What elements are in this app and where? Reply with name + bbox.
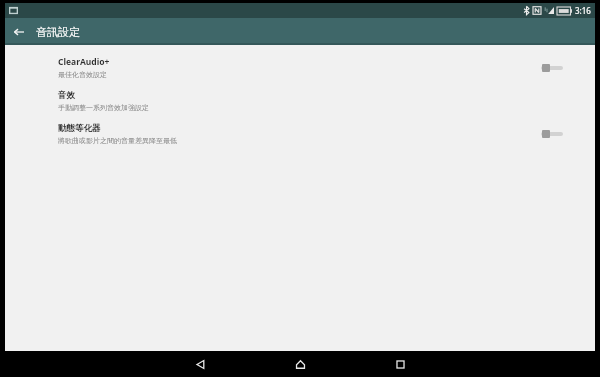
- staticText: 音效: [58, 90, 75, 101]
- button[interactable]: Toggle ClearAudio+: [539, 59, 565, 77]
- button[interactable]: Toggle 動態等化器: [539, 125, 565, 143]
- button[interactable]: 動態等化器: [5, 117, 595, 150]
- button[interactable]: 音效: [5, 84, 595, 117]
- staticText: 最佳化音效設定: [58, 70, 107, 79]
- staticText: 手動調整一系列音效加強設定: [58, 103, 149, 112]
- button[interactable]: Home: [278, 351, 322, 377]
- staticText: 音訊設定: [36, 25, 80, 39]
- button[interactable]: Recent apps: [378, 351, 422, 377]
- button[interactable]: Back: [5, 18, 32, 45]
- staticText: 將歌曲或影片之間的音量差異降至最低: [58, 136, 177, 145]
- staticText: 3:16: [575, 5, 591, 16]
- button[interactable]: ClearAudio+: [5, 51, 595, 84]
- staticText: ClearAudio+: [58, 56, 110, 68]
- button[interactable]: Back: [178, 351, 222, 377]
- staticText: 動態等化器: [58, 123, 101, 134]
